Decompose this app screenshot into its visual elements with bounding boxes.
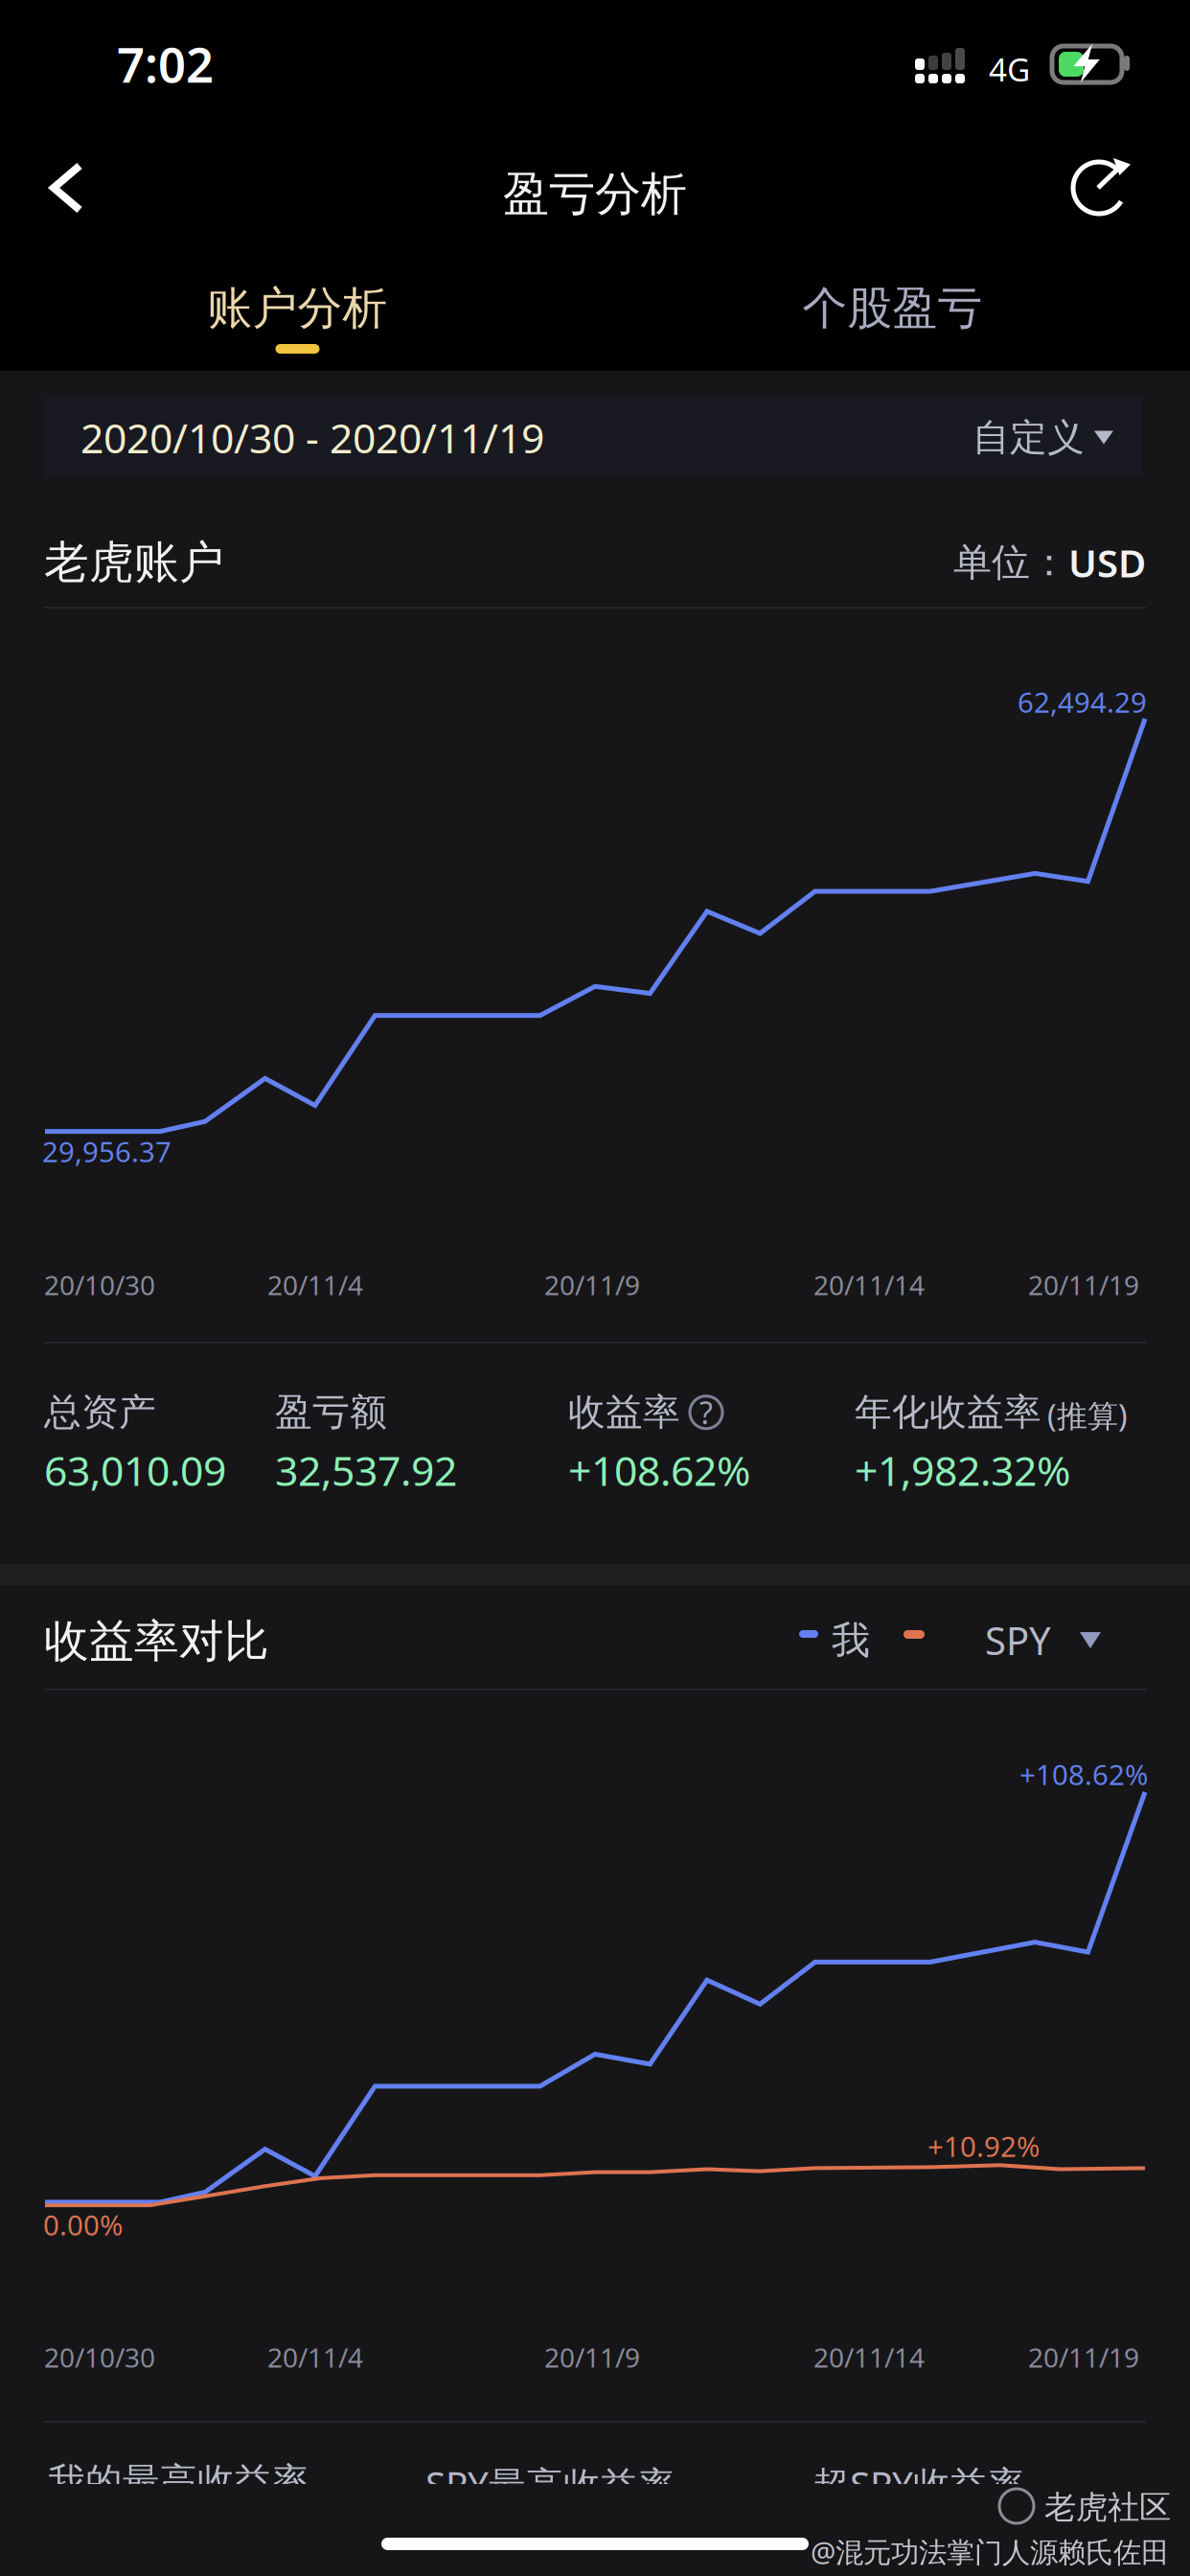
staticText: SPY最高收益率 — [425, 2459, 675, 2508]
staticText: @混元功法掌门人源赖氏佐田 — [811, 2533, 1169, 2570]
staticText: +10.92% — [927, 2127, 1040, 2165]
staticText: 20/10/30 — [44, 1267, 155, 1303]
staticText: 总资产 — [44, 1390, 156, 1435]
button[interactable]: About return rate — [690, 1396, 722, 1429]
staticText: 20/11/19 — [1028, 2339, 1139, 2375]
staticText: +108.62% — [1019, 1756, 1148, 1793]
staticText: 7:02 — [117, 32, 214, 96]
button[interactable]: Refresh — [1044, 134, 1163, 241]
staticText: ? — [699, 1392, 713, 1433]
staticText: 老虎账户 — [44, 535, 224, 590]
staticText: 29,956.37 — [42, 1133, 172, 1170]
staticText: 20/11/4 — [267, 2339, 363, 2375]
button[interactable]: Back — [0, 135, 127, 241]
staticText: 账户分析 — [207, 281, 388, 336]
button[interactable]: SPY — [985, 1615, 1148, 1666]
staticText: 32,537.92 — [275, 1443, 457, 1497]
staticText: 20/11/14 — [813, 2339, 925, 2375]
staticText: 收益率 — [568, 1390, 680, 1435]
staticText: 收益率对比 — [44, 1614, 269, 1669]
button[interactable]: 2020/10/30 - 2020/11/19 — [44, 398, 1142, 477]
staticText: 超SPY收益率 — [812, 2459, 1025, 2508]
staticText: 我 — [832, 1617, 870, 1664]
staticText: (推算) — [1047, 1395, 1128, 1436]
staticText: 20/11/4 — [267, 1267, 363, 1303]
staticText: 2020/10/30 - 2020/11/19 — [80, 410, 544, 465]
staticText: 个股盈亏 — [802, 281, 983, 336]
staticText: 自定义 — [973, 415, 1085, 460]
staticText: +1,982.32% — [855, 1443, 1070, 1497]
staticText: 20/11/9 — [544, 1267, 640, 1303]
staticText: 20/11/19 — [1028, 1267, 1139, 1303]
staticText: 盈亏额 — [275, 1390, 387, 1435]
staticText: SPY — [985, 1615, 1051, 1666]
button[interactable]: 个股盈亏 — [595, 279, 1190, 371]
staticText: 20/10/30 — [44, 2339, 155, 2375]
staticText: +108.62% — [568, 1443, 750, 1497]
staticText: 年化收益率 — [855, 1390, 1041, 1435]
staticText: 63,010.09 — [44, 1443, 226, 1497]
staticText: 0.00% — [43, 2206, 123, 2243]
staticText: 单位： — [953, 539, 1068, 586]
button[interactable]: 账户分析 — [0, 279, 595, 371]
staticText: 我的最高收益率 — [48, 2459, 309, 2505]
staticText: 老虎社区 — [1044, 2488, 1171, 2527]
staticText: 20/11/9 — [544, 2339, 640, 2375]
staticText: 4G — [989, 48, 1030, 90]
staticText: 62,494.29 — [1018, 683, 1147, 721]
staticText: USD — [1068, 537, 1146, 588]
staticText: 20/11/14 — [813, 1267, 925, 1303]
staticText: 盈亏分析 — [503, 166, 687, 222]
